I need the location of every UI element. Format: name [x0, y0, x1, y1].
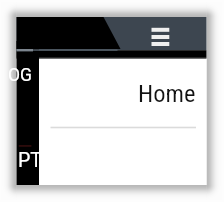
staticText: PT — [18, 149, 42, 172]
button[interactable]: Open navigation menu — [146, 22, 174, 50]
staticText: OG — [8, 65, 32, 86]
staticText: Home — [138, 79, 196, 108]
